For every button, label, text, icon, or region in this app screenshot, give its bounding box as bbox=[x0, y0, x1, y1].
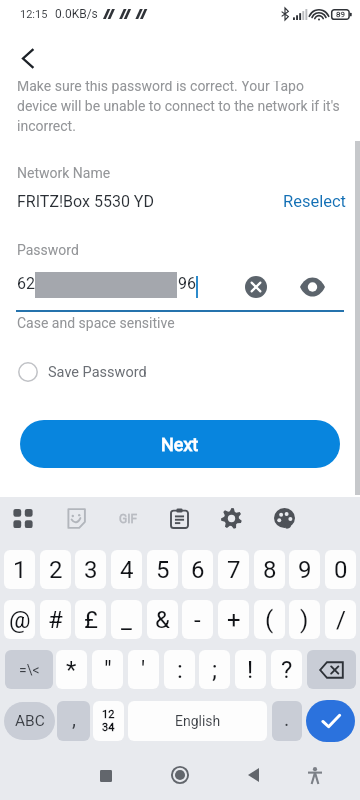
staticText: Reselect bbox=[283, 192, 346, 211]
staticText: 62 bbox=[17, 274, 35, 293]
button[interactable]: Language bbox=[128, 701, 267, 741]
staticText: & bbox=[155, 606, 170, 634]
button[interactable]: Back bbox=[8, 38, 48, 78]
staticText: English bbox=[175, 713, 221, 729]
button[interactable]: Settings bbox=[215, 502, 248, 535]
staticText: FRITZ!Box 5530 YD bbox=[17, 192, 154, 211]
button[interactable]: ? bbox=[271, 650, 302, 689]
button[interactable]: ) bbox=[289, 600, 320, 639]
button[interactable]: _ bbox=[111, 600, 142, 639]
staticText: =\< bbox=[19, 662, 40, 678]
staticText: 7 bbox=[227, 556, 241, 584]
staticText: 5 bbox=[156, 556, 170, 584]
button[interactable]: 5 bbox=[147, 550, 178, 589]
button[interactable]: ' bbox=[128, 650, 159, 689]
staticText: 89 bbox=[336, 10, 345, 19]
button[interactable]: Emoji and symbols bbox=[7, 503, 39, 534]
staticText: 12:15 bbox=[20, 8, 48, 21]
button[interactable]: Stickers bbox=[60, 502, 92, 535]
staticText: 2 bbox=[49, 556, 63, 584]
staticText: Password bbox=[17, 242, 79, 258]
button[interactable]: Symbol keyboard bbox=[5, 650, 53, 689]
staticText: 4 bbox=[120, 556, 134, 584]
button[interactable]: Period bbox=[272, 701, 302, 741]
button[interactable]: # bbox=[40, 600, 71, 639]
button[interactable]: * bbox=[56, 650, 87, 689]
button[interactable]: : bbox=[164, 650, 195, 689]
staticText: Make sure this password is correct. Your… bbox=[17, 81, 342, 134]
staticText: 8 bbox=[263, 556, 277, 584]
button[interactable]: Switch to letters bbox=[4, 702, 55, 740]
staticText: ( bbox=[265, 606, 274, 634]
button[interactable]: + bbox=[218, 600, 249, 639]
button[interactable]: GIF bbox=[111, 506, 145, 531]
staticText: ABC bbox=[15, 712, 45, 730]
staticText: ; bbox=[212, 656, 218, 684]
staticText: Network Name bbox=[17, 165, 111, 181]
staticText: ) bbox=[300, 606, 309, 634]
button[interactable]: 7 bbox=[218, 550, 249, 589]
staticText: 1 bbox=[13, 556, 27, 584]
staticText: Case and space sensitive bbox=[17, 315, 175, 331]
staticText: ! bbox=[247, 656, 254, 684]
button[interactable]: Enter bbox=[306, 700, 355, 742]
button[interactable]: 9 bbox=[289, 550, 320, 589]
button[interactable]: / bbox=[325, 600, 356, 639]
button[interactable]: & bbox=[147, 600, 178, 639]
staticText: # bbox=[48, 606, 63, 634]
staticText: / bbox=[336, 606, 346, 634]
staticText: Save Password bbox=[48, 364, 147, 381]
button[interactable]: 6 bbox=[182, 550, 213, 589]
button[interactable]: Backspace bbox=[307, 650, 356, 689]
button[interactable]: Comma bbox=[57, 701, 90, 741]
button[interactable]: 1 bbox=[4, 550, 35, 589]
staticText: @ bbox=[9, 606, 31, 634]
button[interactable]: " bbox=[92, 650, 123, 689]
button[interactable]: Recent apps bbox=[86, 756, 126, 796]
staticText: 96 bbox=[178, 274, 196, 293]
button[interactable]: 0 bbox=[325, 550, 356, 589]
button[interactable]: £ bbox=[75, 600, 106, 639]
button[interactable]: Home bbox=[160, 755, 200, 795]
staticText: 34 bbox=[102, 721, 115, 734]
button[interactable]: Numbers bbox=[93, 701, 124, 741]
staticText: * bbox=[66, 656, 77, 684]
button[interactable]: Show password bbox=[298, 273, 326, 301]
button[interactable]: Clear text bbox=[242, 273, 270, 301]
button[interactable]: Clipboard bbox=[164, 502, 195, 535]
staticText: , bbox=[72, 707, 76, 730]
staticText: : bbox=[177, 656, 183, 684]
staticText: 3 bbox=[84, 556, 98, 584]
staticText: £ bbox=[84, 606, 98, 634]
staticText: " bbox=[104, 656, 112, 684]
staticText: . bbox=[284, 707, 290, 730]
staticText: ? bbox=[281, 656, 293, 684]
staticText: Next bbox=[161, 434, 199, 455]
button[interactable]: ; bbox=[199, 650, 230, 689]
button[interactable]: Save Password bbox=[14, 355, 184, 389]
button[interactable]: Reselect bbox=[283, 192, 346, 211]
staticText: - bbox=[194, 606, 201, 634]
button[interactable]: 2 bbox=[40, 550, 71, 589]
staticText: 0.0KB/s bbox=[55, 7, 98, 21]
button[interactable]: 8 bbox=[254, 550, 285, 589]
staticText: GIF bbox=[119, 512, 138, 526]
button[interactable]: Back bbox=[233, 755, 273, 795]
staticText: 0 bbox=[334, 556, 348, 584]
button[interactable]: - bbox=[182, 600, 213, 639]
staticText: 12 bbox=[102, 708, 115, 721]
button[interactable]: 3 bbox=[75, 550, 106, 589]
staticText: 9 bbox=[298, 556, 312, 584]
button[interactable]: Accessibility bbox=[295, 755, 335, 795]
staticText: + bbox=[227, 606, 241, 634]
button[interactable]: @ bbox=[4, 600, 35, 639]
staticText: _ bbox=[121, 606, 132, 634]
button[interactable]: ! bbox=[235, 650, 266, 689]
staticText: 6 bbox=[191, 556, 205, 584]
staticText: ' bbox=[141, 656, 146, 684]
button[interactable]: ( bbox=[254, 600, 285, 639]
button[interactable]: Next bbox=[20, 420, 340, 468]
button[interactable]: Theme bbox=[268, 502, 301, 535]
button[interactable]: 4 bbox=[111, 550, 142, 589]
